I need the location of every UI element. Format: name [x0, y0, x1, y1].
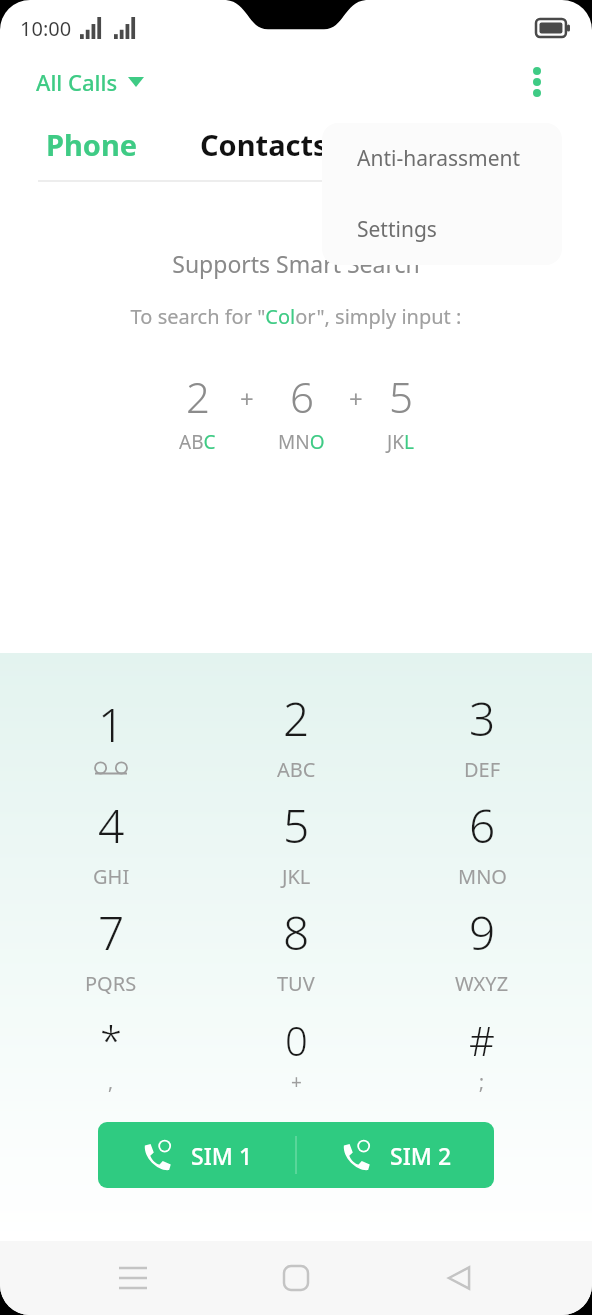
button[interactable]: #: [407, 1002, 557, 1106]
button[interactable]: 5: [221, 788, 371, 895]
staticText: #: [469, 1013, 495, 1067]
button[interactable]: 8: [221, 895, 371, 1002]
staticText: SIM 1: [191, 1140, 253, 1171]
staticText: 6: [469, 794, 496, 857]
button[interactable]: 6: [407, 788, 557, 895]
staticText: Contacts: [200, 125, 328, 164]
button[interactable]: SIM 1: [98, 1122, 295, 1188]
staticText: 0: [285, 1013, 308, 1067]
staticText: 2: [186, 368, 210, 425]
button[interactable]: All Calls: [30, 63, 150, 101]
staticText: Settings: [357, 215, 437, 244]
button[interactable]: Contacts: [192, 119, 336, 170]
staticText: ,: [108, 1069, 114, 1095]
button[interactable]: 2: [221, 681, 371, 788]
staticText: 9: [469, 901, 496, 964]
staticText: ;: [479, 1069, 485, 1095]
button[interactable]: 1: [36, 681, 186, 788]
staticText: 1: [98, 693, 125, 756]
staticText: All Calls: [36, 67, 118, 97]
staticText: Supports Smart Search: [0, 248, 592, 279]
staticText: Phone: [46, 125, 138, 164]
staticText: 2: [283, 687, 310, 750]
staticText: DEF: [464, 756, 501, 783]
button[interactable]: *: [36, 1002, 186, 1106]
staticText: 8: [283, 901, 310, 964]
button[interactable]: Recents: [103, 1248, 163, 1308]
staticText: SIM 2: [390, 1140, 452, 1171]
button[interactable]: More options: [520, 65, 554, 99]
button[interactable]: Settings: [322, 194, 562, 265]
button[interactable]: Phone: [38, 119, 146, 170]
staticText: 5: [389, 368, 413, 425]
staticText: ABC: [179, 429, 216, 455]
staticText: MNO: [278, 429, 325, 455]
staticText: GHI: [93, 863, 130, 890]
staticText: 6: [290, 368, 314, 425]
staticText: ABC: [277, 756, 316, 783]
staticText: Anti-harassment: [357, 144, 521, 173]
staticText: +: [240, 382, 254, 415]
button[interactable]: 7: [36, 895, 186, 1002]
staticText: MNO: [458, 863, 507, 890]
staticText: 7: [98, 901, 125, 964]
button[interactable]: 9: [407, 895, 557, 1002]
staticText: WXYZ: [455, 970, 509, 997]
button[interactable]: Home: [266, 1248, 326, 1308]
staticText: PQRS: [85, 970, 137, 997]
staticText: +: [349, 382, 363, 415]
staticText: +: [291, 1069, 302, 1095]
button[interactable]: 0: [221, 1002, 371, 1106]
button[interactable]: Anti-harassment: [322, 123, 562, 194]
staticText: *: [100, 1013, 123, 1067]
staticText: 5: [283, 794, 310, 857]
staticText: 4: [98, 794, 125, 857]
staticText: JKL: [387, 429, 414, 455]
staticText: 3: [469, 687, 496, 750]
button[interactable]: 3: [407, 681, 557, 788]
staticText: JKL: [282, 863, 311, 890]
button[interactable]: SIM 2: [297, 1122, 494, 1188]
button[interactable]: Back: [429, 1248, 489, 1308]
button[interactable]: 4: [36, 788, 186, 895]
staticText: TUV: [277, 970, 315, 997]
staticText: To search for "Color", simply input :: [0, 303, 592, 330]
staticText: 10:00: [20, 15, 72, 42]
